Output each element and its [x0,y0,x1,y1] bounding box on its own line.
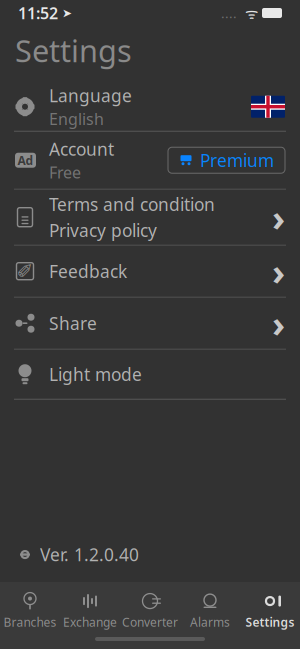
staticText: Light mode [49,363,142,386]
staticText: Ad [17,152,33,168]
staticText: 11:52 [18,2,58,24]
staticText: › [272,299,285,347]
staticText: Share [49,312,97,335]
staticText: Language [49,84,132,107]
staticText: Alarms [190,614,230,630]
button[interactable]: Alarms [180,590,240,632]
staticText: Feedback [49,260,127,283]
staticText: Branches [3,614,56,630]
button[interactable]: Exchange [60,590,120,632]
button[interactable]: Terms and condition [0,190,300,245]
staticText: Premium [200,149,274,172]
button[interactable]: Branches [0,590,60,632]
staticText: Settings [15,30,132,71]
staticText: Converter [122,614,178,630]
staticText: Ver. 1.2.0.40 [40,543,139,566]
staticText: ✐ [16,260,33,283]
button[interactable]: Settings [240,590,300,632]
staticText: Terms and condition [49,193,215,216]
staticText: › [272,193,285,241]
staticText: Privacy policy [49,219,157,242]
staticText: ᯤ [237,3,262,23]
staticText: Settings [245,614,294,630]
button[interactable]: Language [0,83,300,131]
staticText: Exchange [63,614,117,630]
staticText: English [49,108,104,129]
staticText: .... [221,4,237,22]
button[interactable]: ✐ [0,246,300,297]
staticText: › [272,247,285,295]
button[interactable]: Share [0,298,300,349]
button[interactable]: Converter [120,590,180,632]
staticText: ➤ [58,6,72,20]
staticText: Free [49,162,81,183]
staticText: Account [49,138,114,161]
button[interactable]: Light mode [0,350,300,399]
button[interactable]: Premium [168,147,285,173]
